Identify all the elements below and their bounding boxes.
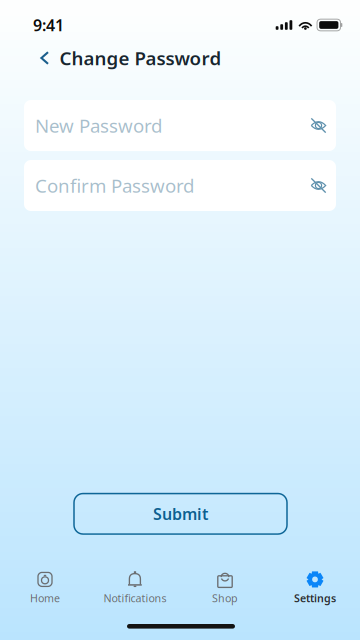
staticText: Notifications xyxy=(103,591,166,605)
button[interactable]: Show New Password xyxy=(310,117,326,133)
staticText: 9:41 xyxy=(33,14,64,36)
staticText: Confirm Password xyxy=(35,173,194,198)
button[interactable]: Shop xyxy=(180,565,270,605)
button[interactable]: Home xyxy=(0,565,90,605)
staticText: Settings xyxy=(294,591,336,605)
staticText: Home xyxy=(30,591,60,605)
button[interactable]: Change Password xyxy=(0,38,221,78)
button[interactable]: Submit xyxy=(74,493,287,534)
staticText: Shop xyxy=(212,591,238,605)
button[interactable]: Show Confirm Password xyxy=(310,177,326,193)
staticText: New Password xyxy=(35,113,162,138)
button[interactable]: Settings xyxy=(270,565,360,605)
staticText: Submit xyxy=(153,503,208,524)
button[interactable]: Notifications xyxy=(90,565,180,605)
staticText: Change Password xyxy=(59,46,221,70)
